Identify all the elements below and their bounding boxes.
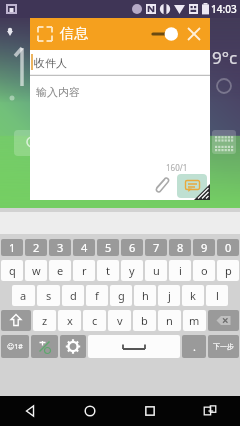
button[interactable]: Settings <box>60 335 86 358</box>
button[interactable]: Send <box>177 174 207 198</box>
button[interactable]: Back <box>0 396 60 426</box>
staticText: z <box>42 313 48 328</box>
button[interactable]: m <box>183 310 206 331</box>
button[interactable]: . <box>182 335 206 358</box>
button[interactable]: u <box>145 260 167 281</box>
button[interactable]: t <box>97 260 119 281</box>
staticText: 收件人 <box>34 56 67 70</box>
button[interactable]: j <box>158 285 180 306</box>
button[interactable]: Split screen <box>180 396 240 426</box>
button[interactable]: e <box>49 260 71 281</box>
button[interactable]: Shift <box>1 310 31 331</box>
staticText: . <box>193 339 196 354</box>
staticText: k <box>190 288 196 303</box>
staticText: y <box>129 263 135 278</box>
staticText: 输入内容 <box>36 85 80 99</box>
button[interactable]: 8 <box>169 239 191 256</box>
staticText: 9 <box>201 240 208 255</box>
staticText: 14:03 <box>211 2 237 16</box>
staticText: p <box>225 263 232 278</box>
button[interactable]: o <box>193 260 215 281</box>
button[interactable]: x <box>58 310 81 331</box>
staticText: m <box>189 313 200 328</box>
staticText: f <box>95 288 99 303</box>
button[interactable]: q <box>1 260 23 281</box>
staticText: n <box>166 313 173 328</box>
button[interactable]: l <box>206 285 228 306</box>
staticText: w <box>32 263 41 278</box>
staticText: 下一步 <box>213 342 234 351</box>
button[interactable]: Home <box>60 396 120 426</box>
button[interactable]: 0 <box>217 239 239 256</box>
staticText: 6 <box>129 240 136 255</box>
staticText: a <box>20 288 27 303</box>
staticText: v <box>117 313 123 328</box>
staticText: 1 <box>9 240 16 255</box>
button[interactable]: 9 <box>193 239 215 256</box>
staticText: c <box>92 313 98 328</box>
staticText: 0 <box>225 240 232 255</box>
staticText: 4 <box>81 240 88 255</box>
button[interactable]: f <box>86 285 108 306</box>
button[interactable]: 输入内容 <box>30 76 210 200</box>
staticText: 7 <box>153 240 160 255</box>
button[interactable]: 6 <box>121 239 143 256</box>
button[interactable]: w <box>25 260 47 281</box>
staticText: d <box>70 288 77 303</box>
button[interactable]: g <box>110 285 132 306</box>
staticText: x <box>67 313 73 328</box>
staticText: 9°c <box>212 46 238 69</box>
button[interactable]: z <box>33 310 56 331</box>
button[interactable]: i <box>169 260 191 281</box>
staticText: l <box>216 288 219 303</box>
button[interactable]: v <box>108 310 131 331</box>
button[interactable]: Toggle <box>152 26 178 42</box>
button[interactable]: d <box>62 285 84 306</box>
button[interactable]: a <box>12 285 35 306</box>
staticText: 160/1 <box>166 162 188 173</box>
button[interactable]: 5 <box>97 239 119 256</box>
button[interactable]: ☺1# <box>1 335 29 358</box>
button[interactable]: Close <box>185 25 203 43</box>
button[interactable]: h <box>134 285 156 306</box>
button[interactable]: 3 <box>49 239 71 256</box>
button[interactable]: b <box>133 310 156 331</box>
staticText: 5 <box>105 240 112 255</box>
button[interactable]: Recents <box>120 396 180 426</box>
button[interactable]: 4 <box>73 239 95 256</box>
button[interactable]: 2 <box>25 239 47 256</box>
button[interactable]: 收件人 <box>30 50 210 76</box>
button[interactable]: Switch language <box>31 335 58 358</box>
button[interactable]: Backspace <box>208 310 239 331</box>
button[interactable]: s <box>37 285 60 306</box>
staticText: e <box>57 263 64 278</box>
staticText: 2 <box>33 240 40 255</box>
staticText: i <box>179 263 182 278</box>
button[interactable]: Fullscreen <box>37 26 53 42</box>
button[interactable]: 1 <box>1 239 23 256</box>
button[interactable]: k <box>182 285 204 306</box>
button[interactable]: Space <box>88 335 180 358</box>
staticText: u <box>153 263 160 278</box>
staticText: g <box>118 288 125 303</box>
staticText: 信息 <box>60 25 88 43</box>
staticText: 8 <box>177 240 184 255</box>
staticText: h <box>142 288 149 303</box>
button[interactable]: Attach <box>151 175 173 197</box>
staticText: j <box>168 288 171 303</box>
staticText: r <box>82 263 87 278</box>
button[interactable]: 下一步 <box>208 335 239 358</box>
button[interactable]: 7 <box>145 239 167 256</box>
staticText: ☺1# <box>7 342 23 352</box>
staticText: o <box>201 263 208 278</box>
button[interactable]: y <box>121 260 143 281</box>
button[interactable]: r <box>73 260 95 281</box>
staticText: s <box>46 288 52 303</box>
button[interactable]: c <box>83 310 106 331</box>
button[interactable]: n <box>158 310 181 331</box>
staticText: q <box>9 263 16 278</box>
staticText: 3 <box>57 240 64 255</box>
button[interactable]: p <box>217 260 239 281</box>
staticText: b <box>141 313 148 328</box>
staticText: t <box>106 263 110 278</box>
